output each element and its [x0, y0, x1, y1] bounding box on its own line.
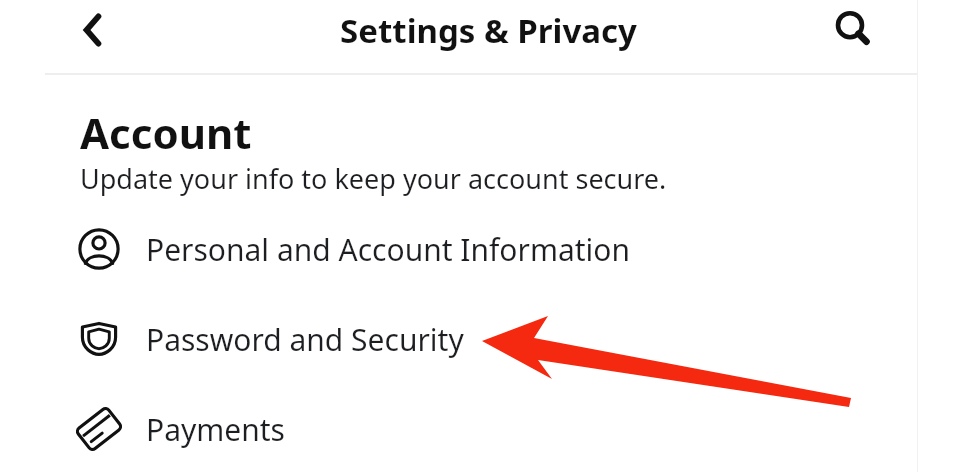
- staticText: Personal and Account Information: [146, 229, 631, 270]
- button[interactable]: Back: [63, 0, 123, 60]
- staticText: Account: [80, 104, 252, 161]
- staticText: Update your info to keep your account se…: [80, 160, 667, 197]
- staticText: Payments: [146, 409, 285, 450]
- staticText: Settings & Privacy: [340, 8, 637, 53]
- button[interactable]: Payments: [45, 393, 918, 465]
- button[interactable]: Password and Security: [45, 303, 918, 375]
- button[interactable]: Personal and Account Information: [45, 213, 918, 285]
- staticText: Password and Security: [146, 319, 464, 360]
- button[interactable]: Search: [823, 0, 885, 60]
